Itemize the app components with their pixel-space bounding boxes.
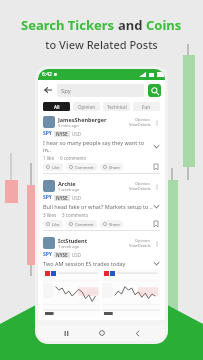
button[interactable]: Like <box>46 163 60 171</box>
button[interactable]: Fun <box>133 102 160 111</box>
staticText: I hear so many people say they want to i… <box>43 139 153 153</box>
staticText: Two AM session ES trades today <box>43 260 153 267</box>
staticText: USD <box>72 195 82 201</box>
button[interactable]: Archie <box>43 180 160 231</box>
button[interactable]: More options <box>153 183 160 190</box>
staticText: Comment <box>75 222 94 227</box>
staticText: ViewDetails <box>129 243 151 248</box>
staticText: USD <box>72 131 82 137</box>
button[interactable]: Expand <box>153 203 160 210</box>
staticText: Fun <box>142 104 151 110</box>
staticText: NYSE <box>56 131 68 137</box>
staticText: All <box>54 104 60 110</box>
staticText: Opinion <box>135 238 151 243</box>
button[interactable]: Technical <box>103 102 130 111</box>
button[interactable]: Expand <box>153 143 160 150</box>
staticText: 5 mins ago <box>58 123 79 128</box>
staticText: 3 comments <box>62 212 89 218</box>
staticText: USD <box>72 252 82 258</box>
button[interactable]: Share <box>103 163 120 171</box>
staticText: NYSE <box>56 252 68 258</box>
staticText: Like <box>52 165 60 170</box>
staticText: Spy <box>61 87 71 95</box>
staticText: 3 likes <box>43 212 57 218</box>
staticText: Technical <box>107 104 127 110</box>
staticText: Opinion <box>78 104 96 110</box>
staticText: 0 comments <box>60 155 87 161</box>
staticText: NYSE <box>56 195 68 201</box>
button[interactable]: Opinion <box>73 102 100 111</box>
staticText: Opinion <box>135 181 151 186</box>
button[interactable]: Recents <box>59 326 73 340</box>
staticText: Search Tickers <box>21 16 118 34</box>
staticText: JamesShenberger <box>58 116 107 123</box>
button[interactable]: More options <box>153 119 160 126</box>
button[interactable]: Search <box>148 84 161 97</box>
staticText: SPY <box>43 130 52 137</box>
button[interactable]: More options <box>153 240 160 247</box>
staticText: 1 like <box>43 155 55 161</box>
button[interactable]: Back <box>42 84 54 96</box>
staticText: Bull head fake or what? Markets setup to… <box>43 203 153 210</box>
button[interactable]: Spy <box>61 84 144 97</box>
staticText: Coins <box>146 16 182 34</box>
staticText: SPY <box>43 251 52 258</box>
button[interactable]: Bookmark <box>152 220 160 228</box>
button[interactable]: All <box>43 102 70 111</box>
button[interactable]: Share <box>103 220 120 228</box>
button[interactable]: Back <box>130 326 144 340</box>
staticText: 6:42 <box>42 71 52 78</box>
staticText: IctStudent <box>58 237 88 244</box>
staticText: Archie <box>58 180 76 187</box>
button[interactable]: Like <box>46 220 60 228</box>
staticText: Share <box>109 165 120 170</box>
staticText: Opinion <box>135 117 151 122</box>
button[interactable]: Bookmark <box>152 163 160 171</box>
button[interactable]: Expand <box>153 260 160 267</box>
button[interactable]: Comment <box>69 220 94 228</box>
staticText: and <box>118 16 146 34</box>
button[interactable]: JamesShenberger <box>43 116 160 174</box>
staticText: Share <box>109 222 120 227</box>
staticText: 1 week ago <box>58 244 80 249</box>
staticText: Comment <box>75 165 94 170</box>
staticText: to View Related Posts <box>45 37 158 52</box>
button[interactable]: Home <box>95 326 109 340</box>
button[interactable]: IctStudent <box>43 237 160 317</box>
button[interactable]: Comment <box>69 163 94 171</box>
staticText: Like <box>52 222 60 227</box>
staticText: SPY <box>43 194 52 201</box>
staticText: ViewDetails <box>129 122 151 127</box>
staticText: 1 week ago <box>58 187 80 192</box>
staticText: ViewDetails <box>129 186 151 191</box>
